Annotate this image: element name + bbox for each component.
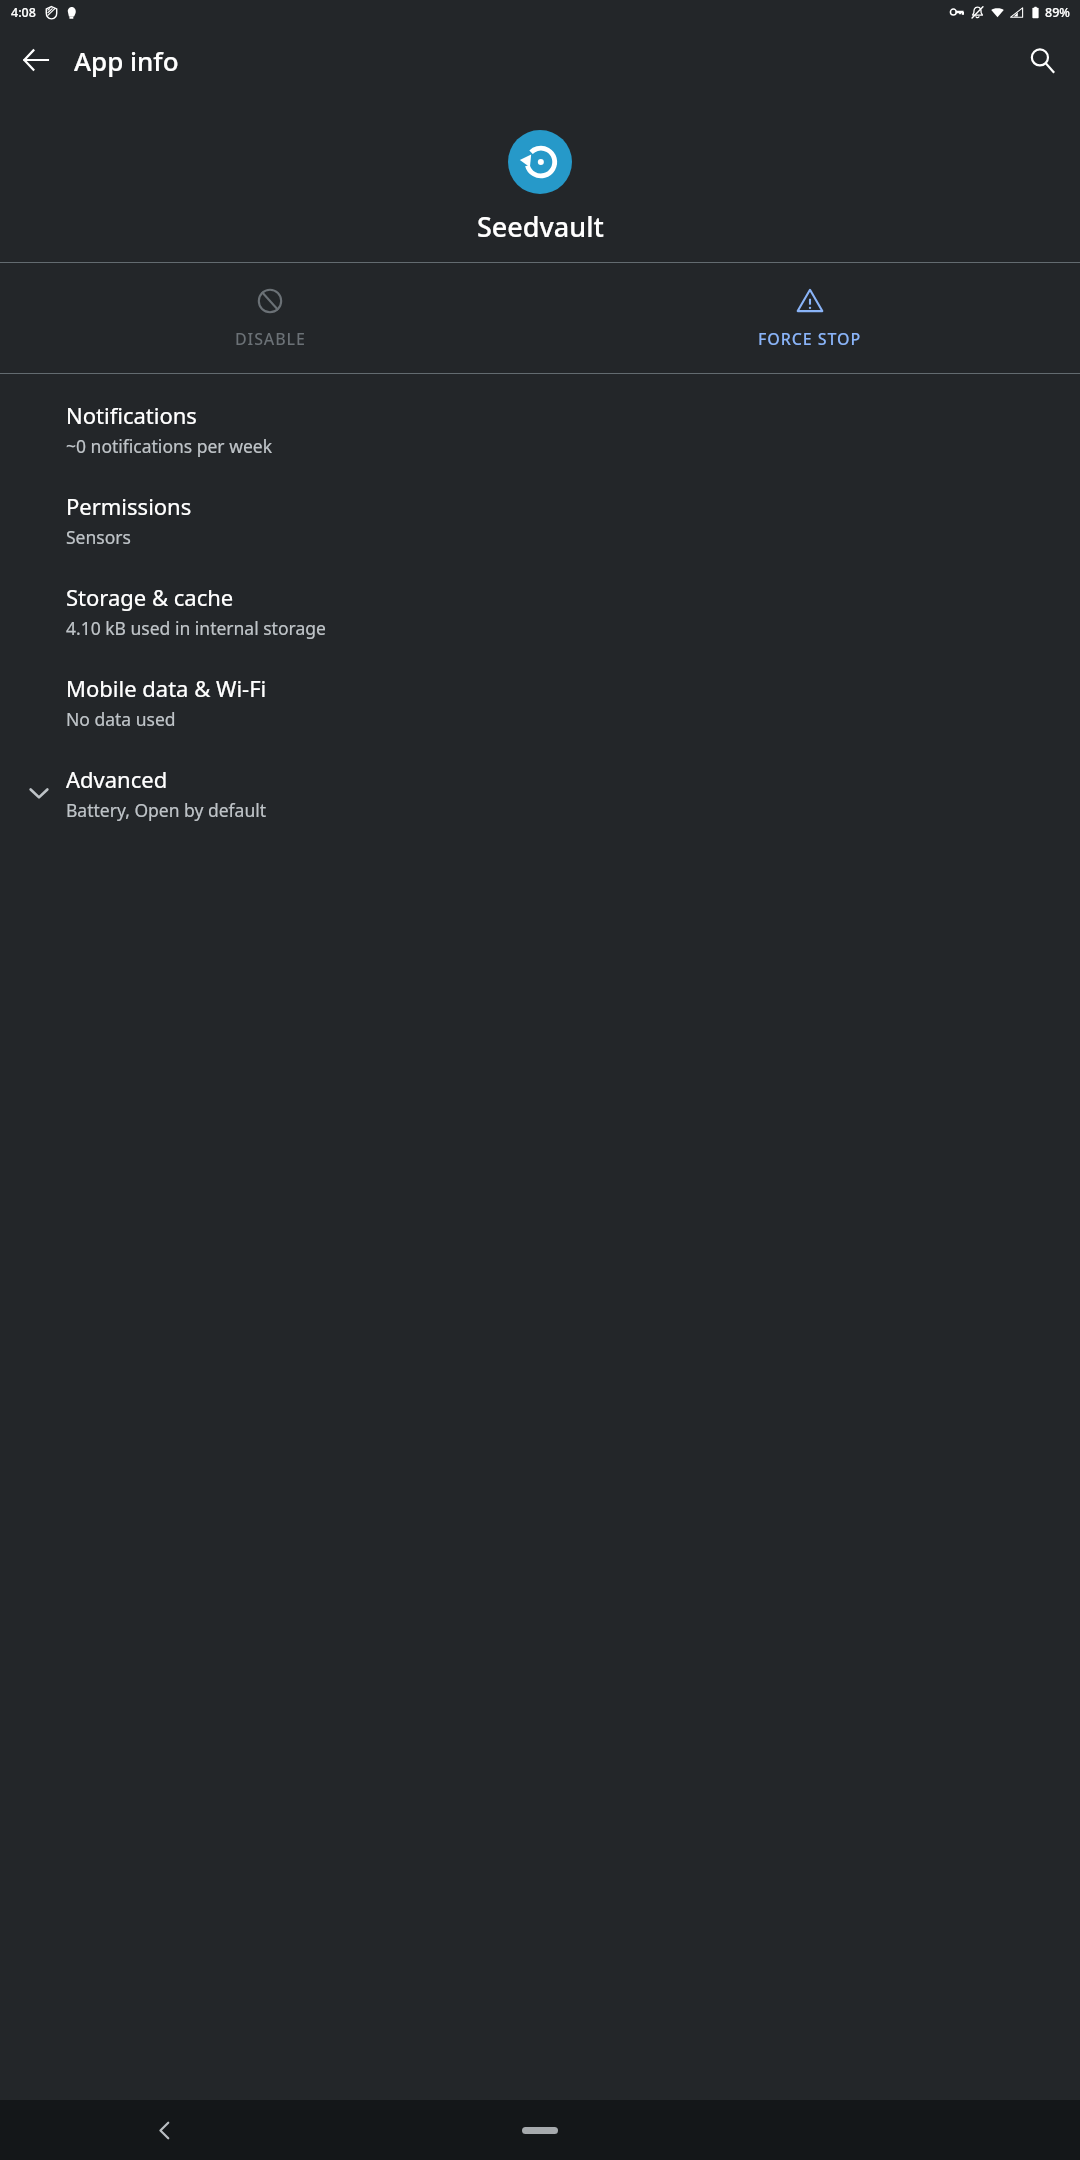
staticText: Permissions — [66, 491, 192, 521]
staticText: 4:08 — [11, 4, 36, 21]
staticText: Seedvault — [477, 208, 604, 245]
staticText: Notifications — [66, 400, 197, 430]
staticText: DISABLE — [235, 328, 306, 350]
staticText: 89% — [1045, 4, 1070, 21]
staticText: 4.10 kB used in internal storage — [66, 616, 326, 640]
staticText: FORCE STOP — [758, 328, 862, 350]
staticText: Storage & cache — [66, 582, 234, 612]
button[interactable]: FORCE STOP — [540, 263, 1080, 373]
button[interactable]: Permissions — [0, 474, 1080, 565]
button[interactable]: Back — [140, 2106, 188, 2154]
button[interactable]: Home — [522, 2127, 558, 2134]
button[interactable]: Back — [8, 32, 64, 88]
button[interactable]: DISABLE — [0, 263, 540, 373]
staticText: Battery, Open by default — [66, 798, 267, 822]
staticText: App info — [74, 43, 179, 78]
staticText: Advanced — [66, 764, 168, 794]
staticText: No data used — [66, 707, 176, 731]
button[interactable]: Mobile data & Wi-Fi — [0, 656, 1080, 747]
button[interactable]: Storage & cache — [0, 565, 1080, 656]
button[interactable]: Advanced — [0, 747, 1080, 838]
staticText: Mobile data & Wi-Fi — [66, 673, 267, 703]
button[interactable]: Notifications — [0, 383, 1080, 474]
staticText: Sensors — [66, 525, 131, 549]
staticText: ~0 notifications per week — [66, 434, 272, 458]
button[interactable]: Search — [1014, 32, 1070, 88]
